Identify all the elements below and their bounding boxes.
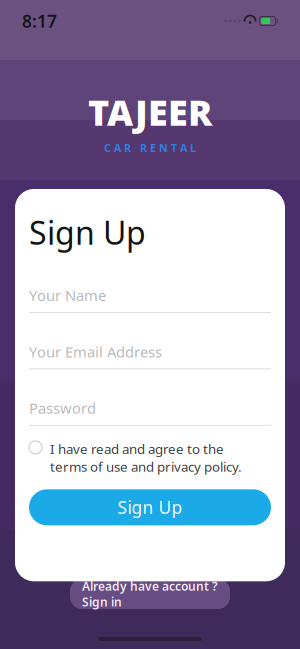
- button[interactable]: Already have account ? Sign in: [70, 579, 230, 609]
- button[interactable]: I have read and agree to the terms of us…: [29, 440, 271, 475]
- button[interactable]: Sign Up: [29, 489, 271, 525]
- staticText: I have read and agree to the terms of us…: [50, 440, 242, 475]
- staticText: Your Email Address: [29, 342, 162, 361]
- staticText: Sign Up: [117, 496, 182, 519]
- staticText: 8:17: [22, 9, 57, 32]
- staticText: Password: [29, 398, 96, 418]
- staticText: Sign Up: [29, 211, 146, 253]
- staticText: Your Name: [29, 285, 106, 305]
- staticText: TAJEER: [88, 88, 212, 136]
- staticText: Already have account ? Sign in: [82, 578, 218, 610]
- staticText: C A R R E N T A L: [104, 141, 196, 155]
